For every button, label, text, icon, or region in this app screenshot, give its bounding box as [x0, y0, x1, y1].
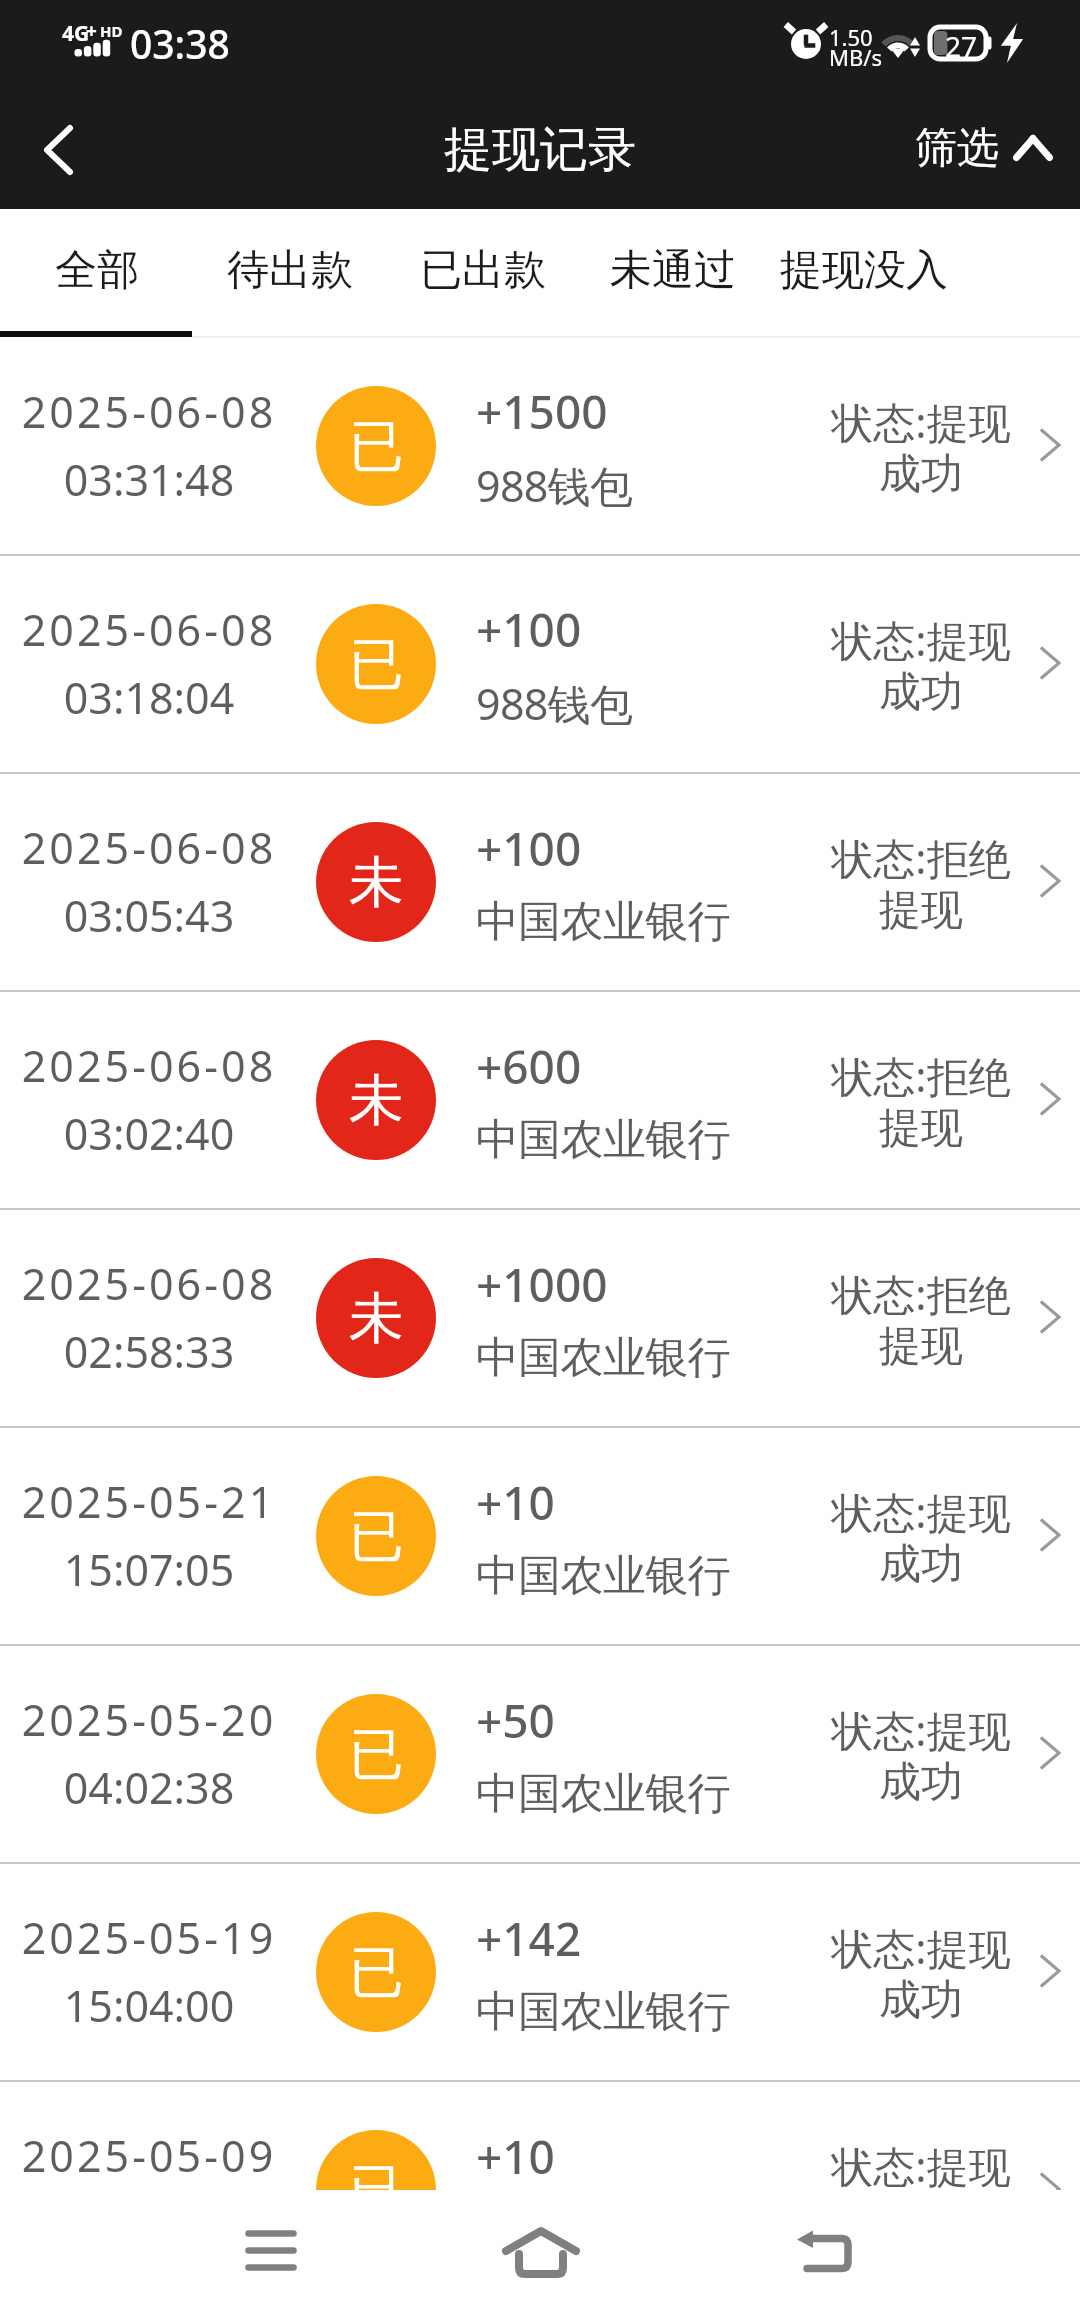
staticText: 状态:拒绝 提现: [801, 1047, 1041, 1155]
staticText: 状态:拒绝 提现: [801, 1265, 1041, 1373]
staticText: 已: [349, 1720, 404, 1789]
button[interactable]: 未通过: [588, 209, 758, 331]
staticText: 状态:提现 成功: [801, 611, 1041, 719]
staticText: 2025-06-08 03:18:04: [14, 600, 284, 727]
staticText: 03:38: [130, 17, 230, 70]
staticText: +10 中国农业银行: [476, 2125, 730, 2191]
staticText: +100 中国农业银行: [476, 817, 730, 949]
staticText: +100 988钱包: [476, 598, 633, 732]
button[interactable]: 2025-06-08 03:02:40: [0, 992, 1080, 1210]
button[interactable]: Recent apps: [191, 2190, 351, 2316]
button[interactable]: 2025-05-21 15:07:05: [0, 1428, 1080, 1646]
button[interactable]: 提现没入: [758, 209, 970, 331]
staticText: 2025-05-09 11:20:00: [14, 2126, 284, 2191]
button[interactable]: 2025-06-08 03:05:43: [0, 774, 1080, 992]
staticText: 状态:提现 成功: [801, 393, 1041, 501]
button[interactable]: Back: [743, 2190, 903, 2316]
button[interactable]: 已出款: [398, 209, 568, 331]
staticText: 已: [349, 1502, 404, 1571]
staticText: 已出款: [420, 244, 546, 297]
staticText: 2025-05-19 15:04:00: [14, 1908, 284, 2035]
staticText: 已: [349, 412, 404, 481]
staticText: +50 中国农业银行: [476, 1689, 730, 1821]
button[interactable]: 2025-06-08 03:31:48: [0, 338, 1080, 556]
staticText: 未: [349, 1284, 404, 1353]
staticText: 提现记录: [444, 120, 636, 180]
button[interactable]: 2025-06-08 03:18:04: [0, 556, 1080, 774]
staticText: 全部: [55, 244, 139, 297]
staticText: 2025-06-08 03:31:48: [14, 382, 284, 509]
button[interactable]: 2025-06-08 02:58:33: [0, 1210, 1080, 1428]
staticText: 提现没入: [780, 244, 948, 297]
staticText: 2025-06-08 03:05:43: [14, 818, 284, 945]
button[interactable]: 全部: [33, 209, 161, 331]
staticText: 4G: [62, 19, 90, 48]
staticText: HD: [100, 21, 123, 41]
staticText: 27: [945, 27, 978, 65]
staticText: 状态:提现 成功: [801, 1483, 1041, 1591]
staticText: 未: [349, 1066, 404, 1135]
button[interactable]: 2025-05-09 11:20:00: [0, 2082, 1080, 2191]
staticText: 已: [349, 630, 404, 699]
button[interactable]: 待出款: [205, 209, 375, 331]
staticText: 筛选: [915, 122, 999, 175]
button[interactable]: Home: [460, 2190, 620, 2316]
staticText: 1.50: [829, 22, 873, 52]
button[interactable]: 2025-05-20 04:02:38: [0, 1646, 1080, 1864]
staticText: +: [86, 18, 97, 44]
staticText: 未: [349, 848, 404, 917]
button[interactable]: 2025-05-19 15:04:00: [0, 1864, 1080, 2082]
staticText: 已: [349, 1938, 404, 2007]
staticText: +1500 988钱包: [476, 380, 633, 514]
staticText: 2025-05-21 15:07:05: [14, 1472, 284, 1599]
staticText: 已: [349, 2156, 404, 2191]
staticText: +1000 中国农业银行: [476, 1253, 730, 1385]
staticText: +600 中国农业银行: [476, 1035, 730, 1167]
staticText: 状态:拒绝 提现: [801, 829, 1041, 937]
button[interactable]: Back: [0, 91, 118, 209]
staticText: 状态:提现 成功: [801, 1701, 1041, 1809]
staticText: 状态:提现 成功: [801, 2137, 1041, 2191]
staticText: MB/s: [829, 42, 882, 72]
staticText: 待出款: [227, 244, 353, 297]
staticText: 2025-06-08 03:02:40: [14, 1036, 284, 1163]
staticText: +10 中国农业银行: [476, 1471, 730, 1603]
staticText: 2025-06-08 02:58:33: [14, 1254, 284, 1381]
staticText: 2025-05-20 04:02:38: [14, 1690, 284, 1817]
staticText: 状态:提现 成功: [801, 1919, 1041, 2027]
staticText: +142 中国农业银行: [476, 1907, 730, 2039]
staticText: 未通过: [610, 244, 736, 297]
button[interactable]: 筛选: [890, 90, 1080, 209]
